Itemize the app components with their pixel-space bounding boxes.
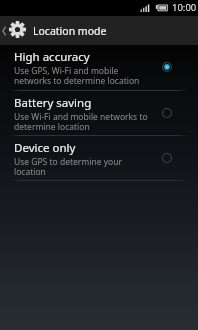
- staticText: Use GPS, Wi-Fi and mobile networks to de…: [14, 65, 140, 87]
- staticText: Battery saving: [14, 95, 92, 111]
- staticText: Device only: [14, 140, 76, 156]
- staticText: Use GPS to determine your location: [14, 156, 122, 178]
- button[interactable]: Battery saving: [0, 91, 198, 136]
- button[interactable]: Navigate up, Location mode: [0, 16, 107, 45]
- button[interactable]: High accuracy: [0, 45, 198, 90]
- staticText: Use Wi-Fi and mobile networks to determi…: [14, 111, 148, 133]
- staticText: Location mode: [33, 24, 107, 38]
- staticText: High accuracy: [14, 49, 90, 65]
- button[interactable]: Device only: [0, 136, 198, 181]
- staticText: 10:00: [172, 1, 197, 14]
